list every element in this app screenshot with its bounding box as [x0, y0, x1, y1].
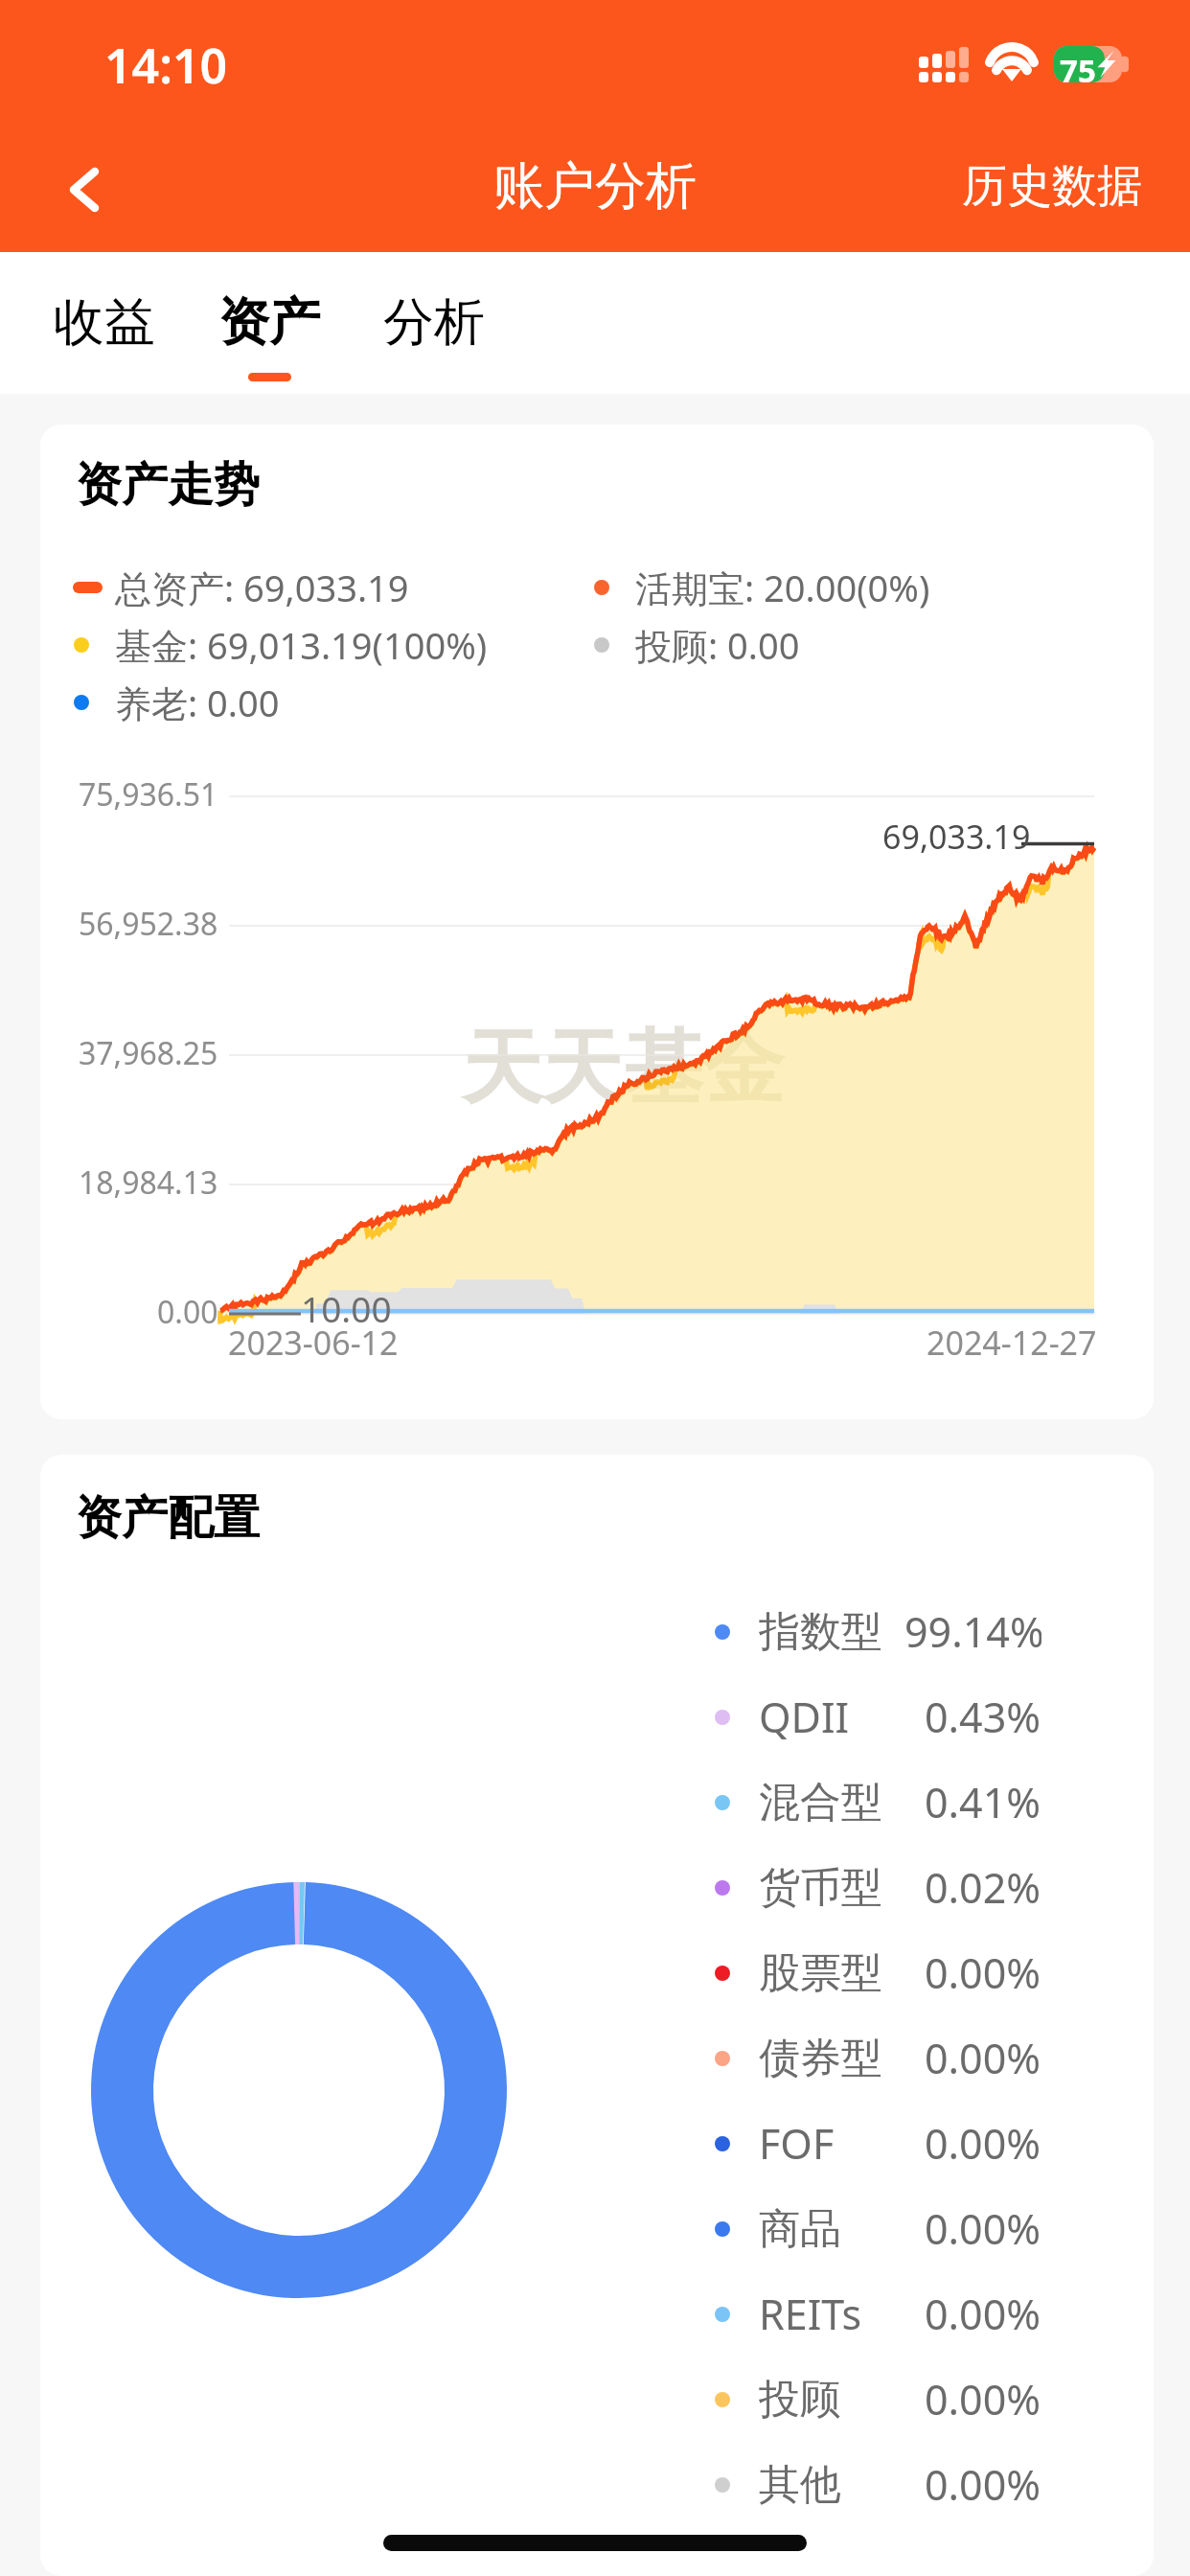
- staticText: 债券型: [759, 2033, 882, 2084]
- staticText: 99.14%: [904, 1603, 1041, 1660]
- staticText: 天天基金: [462, 1018, 784, 1119]
- staticText: 资产: [218, 290, 320, 355]
- button[interactable]: 资产: [187, 290, 352, 381]
- button[interactable]: 股票型: [712, 1930, 1154, 2015]
- staticText: 69,033.19: [882, 815, 1031, 859]
- staticText: 10.00: [301, 1284, 392, 1332]
- staticText: 股票型: [759, 1947, 882, 1999]
- staticText: REITs: [759, 2286, 862, 2342]
- staticText: 0.02%: [925, 1859, 1041, 1916]
- staticText: 0.00: [157, 1291, 218, 1333]
- staticText: 2024-12-27: [927, 1321, 1097, 1365]
- staticText: 0.00%: [925, 2371, 1041, 2427]
- button[interactable]: 收益: [22, 290, 187, 381]
- staticText: QDII: [759, 1689, 850, 1745]
- staticText: 0.00%: [925, 2115, 1041, 2172]
- button[interactable]: 资产走势: [40, 425, 1154, 1419]
- staticText: 分析: [383, 290, 485, 355]
- button[interactable]: 债券型: [712, 2015, 1154, 2101]
- staticText: 37,968.25: [79, 1032, 218, 1074]
- button[interactable]: 分析: [352, 290, 516, 381]
- staticText: 活期宝: 20.00(0%): [635, 563, 930, 612]
- staticText: 0.00%: [925, 2200, 1041, 2257]
- staticText: 混合型: [759, 1777, 882, 1828]
- staticText: 56,952.38: [79, 903, 218, 945]
- staticText: 投顾: [759, 2374, 841, 2426]
- staticText: 0.00%: [925, 2286, 1041, 2342]
- button[interactable]: 资产配置: [40, 1455, 1154, 2576]
- staticText: 历史数据: [962, 158, 1142, 215]
- button[interactable]: Back: [0, 120, 139, 252]
- staticText: 商品: [759, 2203, 841, 2255]
- staticText: 0.41%: [925, 1774, 1041, 1830]
- button[interactable]: QDII: [712, 1674, 1154, 1759]
- staticText: 收益: [54, 290, 155, 355]
- staticText: 0.43%: [925, 1689, 1041, 1745]
- staticText: 75,936.51: [79, 773, 218, 816]
- staticText: 0.00%: [925, 2030, 1041, 2086]
- button[interactable]: 历史数据: [914, 120, 1190, 252]
- staticText: 投顾: 0.00: [635, 620, 800, 670]
- button[interactable]: FOF: [712, 2101, 1154, 2186]
- button[interactable]: REITs: [712, 2271, 1154, 2357]
- staticText: 0.00%: [925, 2456, 1041, 2513]
- staticText: 0.00%: [925, 1944, 1041, 2001]
- staticText: 其他: [759, 2459, 841, 2511]
- button[interactable]: 货币型: [712, 1845, 1154, 1930]
- button[interactable]: 投顾: [712, 2357, 1154, 2442]
- staticText: FOF: [759, 2115, 835, 2172]
- staticText: 14:10: [104, 33, 228, 98]
- button[interactable]: 混合型: [712, 1759, 1154, 1845]
- staticText: 2023-06-12: [228, 1321, 399, 1365]
- button[interactable]: 商品: [712, 2186, 1154, 2271]
- staticText: 资产走势: [76, 456, 260, 514]
- staticText: 总资产: 69,033.19: [115, 563, 409, 612]
- staticText: 指数型: [759, 1606, 882, 1658]
- button[interactable]: 其他: [712, 2442, 1154, 2527]
- button[interactable]: 指数型: [712, 1589, 1154, 1674]
- staticText: 养老: 0.00: [115, 678, 280, 727]
- staticText: 基金: 69,013.19(100%): [115, 620, 488, 670]
- staticText: 18,984.13: [79, 1161, 218, 1204]
- staticText: 账户分析: [493, 154, 697, 218]
- staticText: 资产配置: [76, 1489, 260, 1547]
- staticText: 货币型: [759, 1862, 882, 1914]
- staticText: 天天基金: [462, 1018, 784, 1119]
- staticText: 75: [1060, 49, 1096, 85]
